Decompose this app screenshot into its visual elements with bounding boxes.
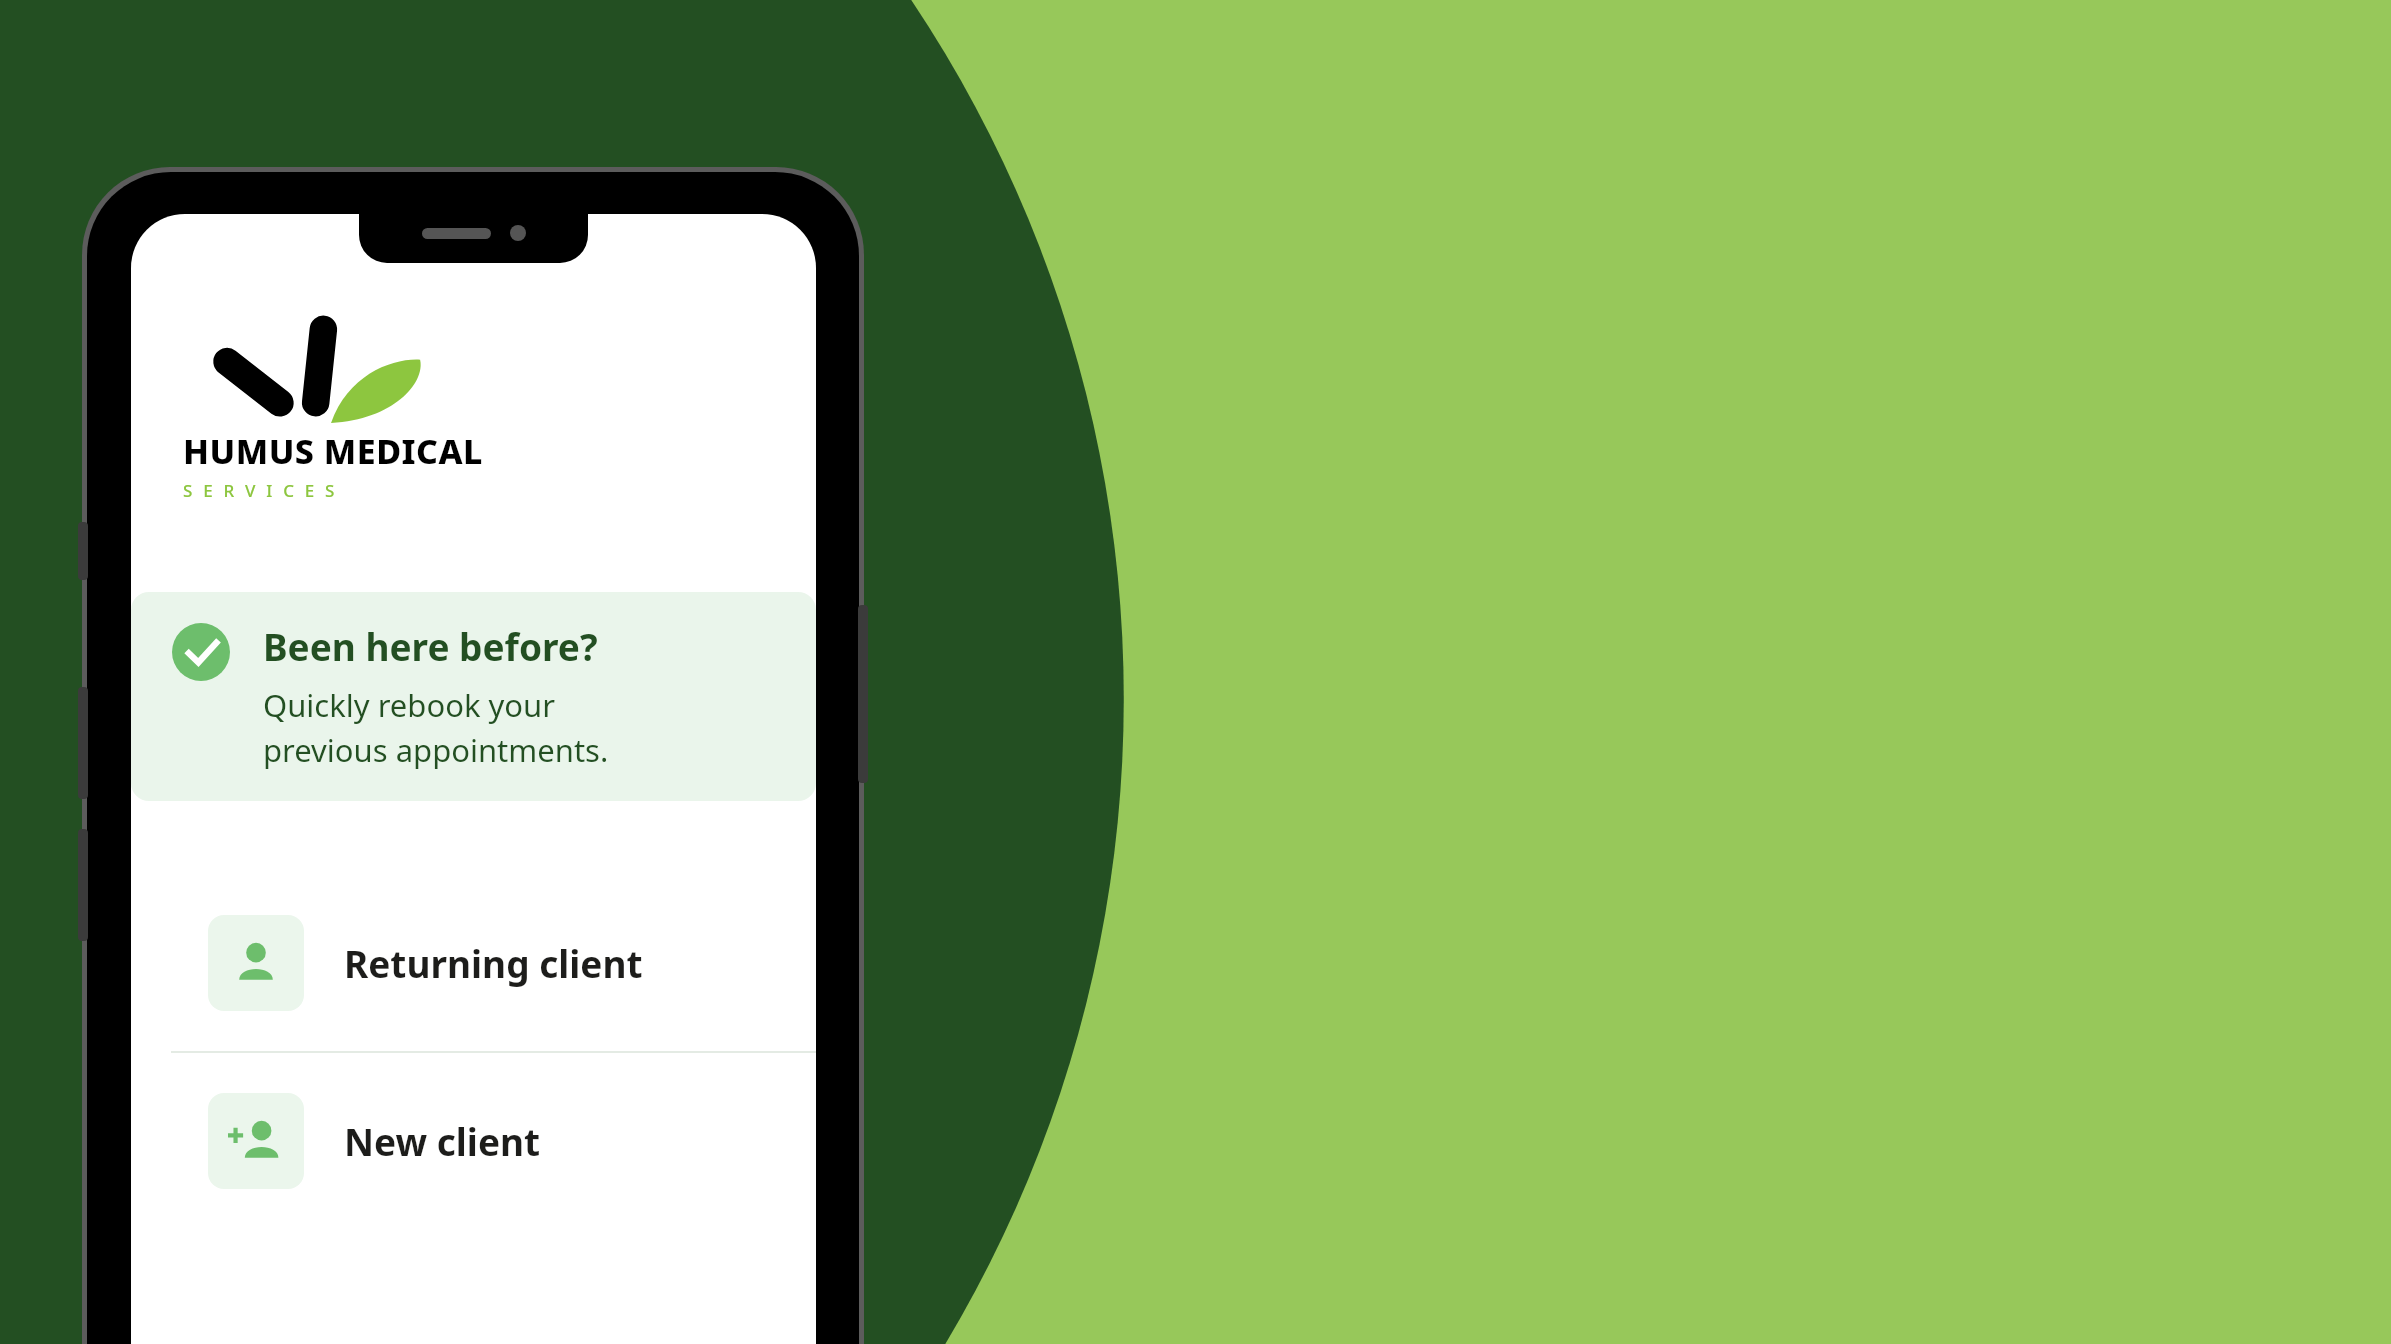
- staticText: Quickly rebook your previous appointment…: [263, 684, 609, 771]
- staticText: HUMUS MEDICAL: [183, 428, 483, 474]
- other: Returning client: [208, 915, 304, 1011]
- staticText: New client: [344, 1116, 541, 1166]
- staticText: Been here before?: [263, 621, 598, 671]
- staticText: S E R V I C E S: [183, 479, 338, 502]
- button[interactable]: Been here before?: [131, 592, 816, 801]
- button[interactable]: Returning client: [131, 875, 816, 1051]
- staticText: Returning client: [344, 938, 643, 988]
- other: New client: [208, 1093, 304, 1189]
- button[interactable]: New client: [131, 1053, 816, 1229]
